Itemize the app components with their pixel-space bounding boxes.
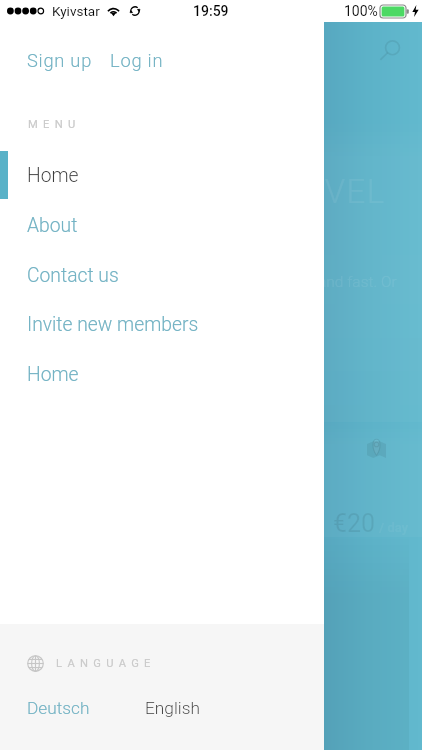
staticText: English: [145, 698, 200, 718]
staticText: €20: [333, 509, 376, 538]
staticText: LANGUAGE: [56, 657, 156, 670]
staticText: Log in: [110, 50, 164, 71]
button[interactable]: Home: [0, 350, 324, 398]
button[interactable]: Deutsch: [27, 698, 90, 718]
button[interactable]: Invite new members: [0, 300, 324, 348]
button[interactable]: Home: [0, 151, 324, 199]
staticText: Sign up: [27, 50, 93, 71]
other: Search: [382, 39, 403, 60]
staticText: Home: [27, 363, 79, 386]
staticText: and fast. Or: [318, 273, 397, 291]
staticText: Home: [27, 164, 79, 187]
staticText: AVEL: [304, 172, 386, 211]
staticText: Kyivstar: [52, 3, 100, 19]
staticText: 19:59: [193, 3, 229, 19]
staticText: Deutsch: [27, 698, 90, 718]
button[interactable]: English: [145, 698, 200, 718]
staticText: MENU: [28, 118, 81, 131]
button[interactable]: Log in: [110, 50, 164, 71]
staticText: Invite new members: [27, 313, 199, 336]
button[interactable]: About: [0, 201, 324, 249]
button[interactable]: Contact us: [0, 251, 324, 299]
staticText: 100%: [344, 3, 378, 19]
staticText: About: [27, 214, 78, 237]
staticText: Contact us: [27, 264, 119, 287]
button[interactable]: Sign up: [27, 50, 93, 71]
staticText: / day: [379, 520, 409, 535]
